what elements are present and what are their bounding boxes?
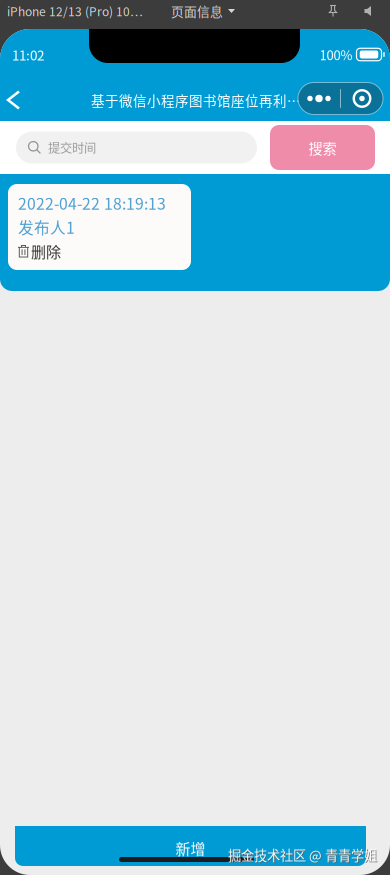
button[interactable]: Sound	[360, 2, 379, 20]
button[interactable]: Mini program menu	[298, 82, 383, 114]
staticText: 11:02	[12, 45, 44, 64]
staticText: 掘金技术社区 @ 青青学姐	[229, 846, 378, 865]
staticText: 搜索	[308, 137, 336, 158]
staticText: 删除	[31, 240, 61, 262]
button[interactable]: Back	[0, 81, 27, 118]
button[interactable]: 删除	[18, 239, 61, 263]
staticText: 100%	[319, 45, 352, 64]
button[interactable]: Pin window	[324, 1, 341, 20]
button[interactable]: 页面信息	[167, 0, 239, 23]
staticText: 基于微信小程序图书馆座位再利…	[91, 90, 301, 110]
staticText: 页面信息	[171, 2, 223, 20]
staticText: 掘金技术社区 @ 青青学姐	[228, 845, 377, 864]
staticText: 2022-04-22 18:19:13	[18, 192, 166, 214]
staticText: iPhone 12/13 (Pro) 10…	[7, 2, 143, 20]
button[interactable]: 搜索	[270, 125, 375, 170]
staticText: 提交时间	[48, 139, 96, 156]
staticText: 新增	[175, 837, 205, 859]
staticText: 发布人1	[18, 216, 75, 238]
